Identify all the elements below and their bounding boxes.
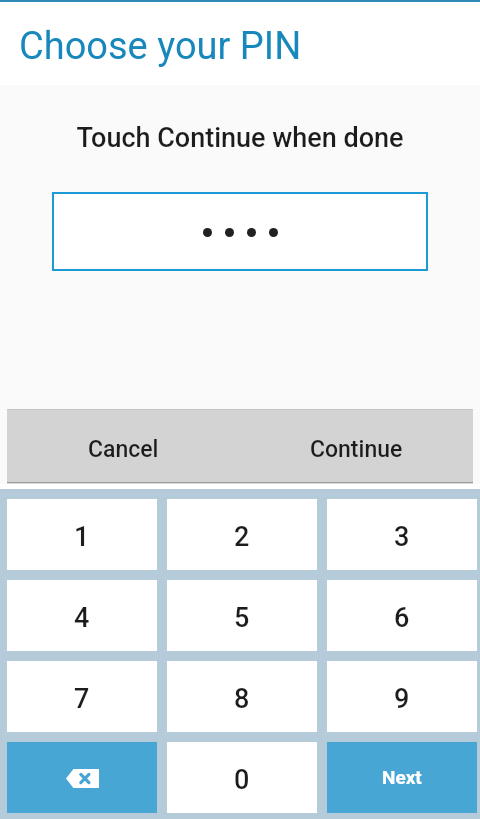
staticText: Touch Continue when done [0,122,480,154]
button[interactable]: 0 [167,742,317,813]
button[interactable]: 2 [167,499,317,570]
staticText: Next [382,766,422,788]
staticText: 6 [394,602,410,634]
button[interactable]: Continue [240,410,473,482]
staticText: Cancel [88,436,159,463]
button[interactable]: 7 [7,661,157,732]
button[interactable]: 4 [7,580,157,651]
button[interactable]: 5 [167,580,317,651]
staticText: 7 [74,683,90,715]
button[interactable]: Delete [7,742,157,813]
button[interactable]: 1 [7,499,157,570]
button[interactable]: 8 [167,661,317,732]
staticText: 9 [394,683,410,715]
staticText: 2 [234,521,250,553]
button[interactable]: Next [327,742,477,813]
button[interactable]: 6 [327,580,477,651]
button[interactable]: Cancel [7,410,240,482]
button[interactable] [52,192,428,271]
staticText: 1 [74,521,90,553]
staticText: Choose your PIN [19,24,302,69]
staticText: 3 [394,521,410,553]
staticText: 4 [74,602,90,634]
staticText: 0 [234,764,250,796]
staticText: Continue [310,436,403,463]
button[interactable]: 3 [327,499,477,570]
staticText: 5 [234,602,250,634]
button[interactable]: 9 [327,661,477,732]
staticText: 8 [234,683,250,715]
